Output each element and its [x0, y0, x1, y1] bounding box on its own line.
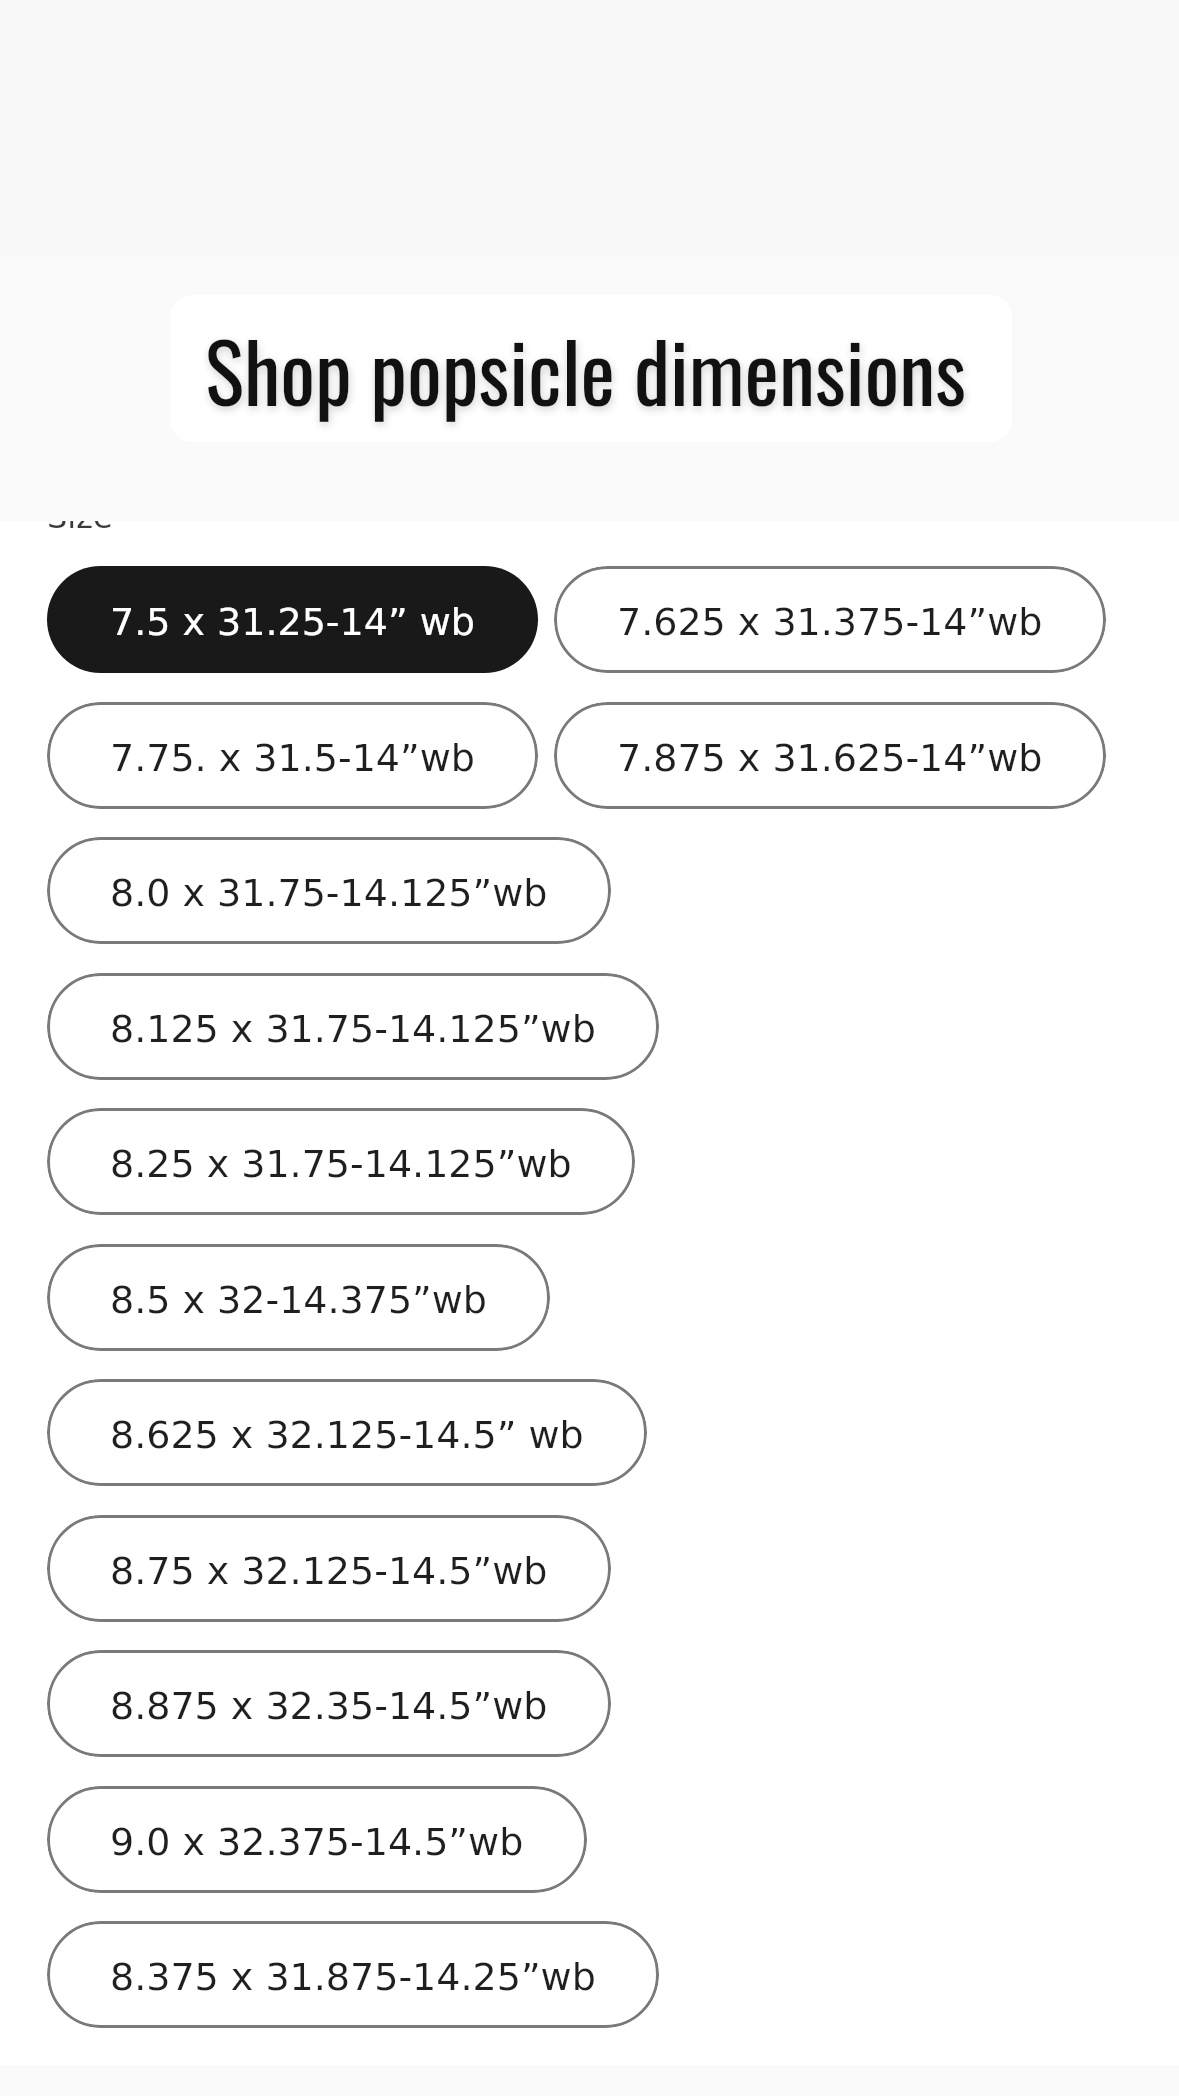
- staticText: 7.875 x 31.625-14”wb: [617, 736, 1043, 780]
- button[interactable]: 8.875 x 32.35-14.5”wb: [47, 1650, 611, 1757]
- button[interactable]: 8.5 x 32-14.375”wb: [47, 1244, 550, 1351]
- staticText: Shop popsicle dimensions: [205, 308, 966, 430]
- button[interactable]: 9.0 x 32.375-14.5”wb: [47, 1786, 587, 1893]
- button[interactable]: 8.0 x 31.75-14.125”wb: [47, 837, 611, 944]
- staticText: 8.25 x 31.75-14.125”wb: [110, 1142, 572, 1186]
- button[interactable]: 7.75. x 31.5-14”wb: [47, 702, 538, 809]
- button[interactable]: 8.375 x 31.875-14.25”wb: [47, 1921, 659, 2028]
- staticText: 8.125 x 31.75-14.125”wb: [110, 1007, 596, 1051]
- staticText: 8.0 x 31.75-14.125”wb: [110, 871, 548, 915]
- button[interactable]: 7.875 x 31.625-14”wb: [554, 702, 1106, 809]
- staticText: 8.875 x 32.35-14.5”wb: [110, 1684, 548, 1728]
- staticText: 8.625 x 32.125-14.5” wb: [110, 1413, 584, 1457]
- staticText: 9.0 x 32.375-14.5”wb: [110, 1820, 524, 1864]
- staticText: 8.75 x 32.125-14.5”wb: [110, 1549, 548, 1593]
- staticText: 7.75. x 31.5-14”wb: [110, 736, 475, 780]
- button[interactable]: 8.25 x 31.75-14.125”wb: [47, 1108, 635, 1215]
- button[interactable]: 8.625 x 32.125-14.5” wb: [47, 1379, 647, 1486]
- staticText: 7.625 x 31.375-14”wb: [617, 600, 1043, 644]
- staticText: 8.5 x 32-14.375”wb: [110, 1278, 487, 1322]
- button[interactable]: 7.625 x 31.375-14”wb: [554, 566, 1106, 673]
- button[interactable]: 8.125 x 31.75-14.125”wb: [47, 973, 659, 1080]
- staticText: 8.375 x 31.875-14.25”wb: [110, 1955, 596, 1999]
- staticText: Size: [47, 498, 113, 535]
- button[interactable]: 7.5 x 31.25-14” wb: [47, 566, 538, 673]
- staticText: 7.5 x 31.25-14” wb: [110, 600, 475, 644]
- button[interactable]: 8.75 x 32.125-14.5”wb: [47, 1515, 611, 1622]
